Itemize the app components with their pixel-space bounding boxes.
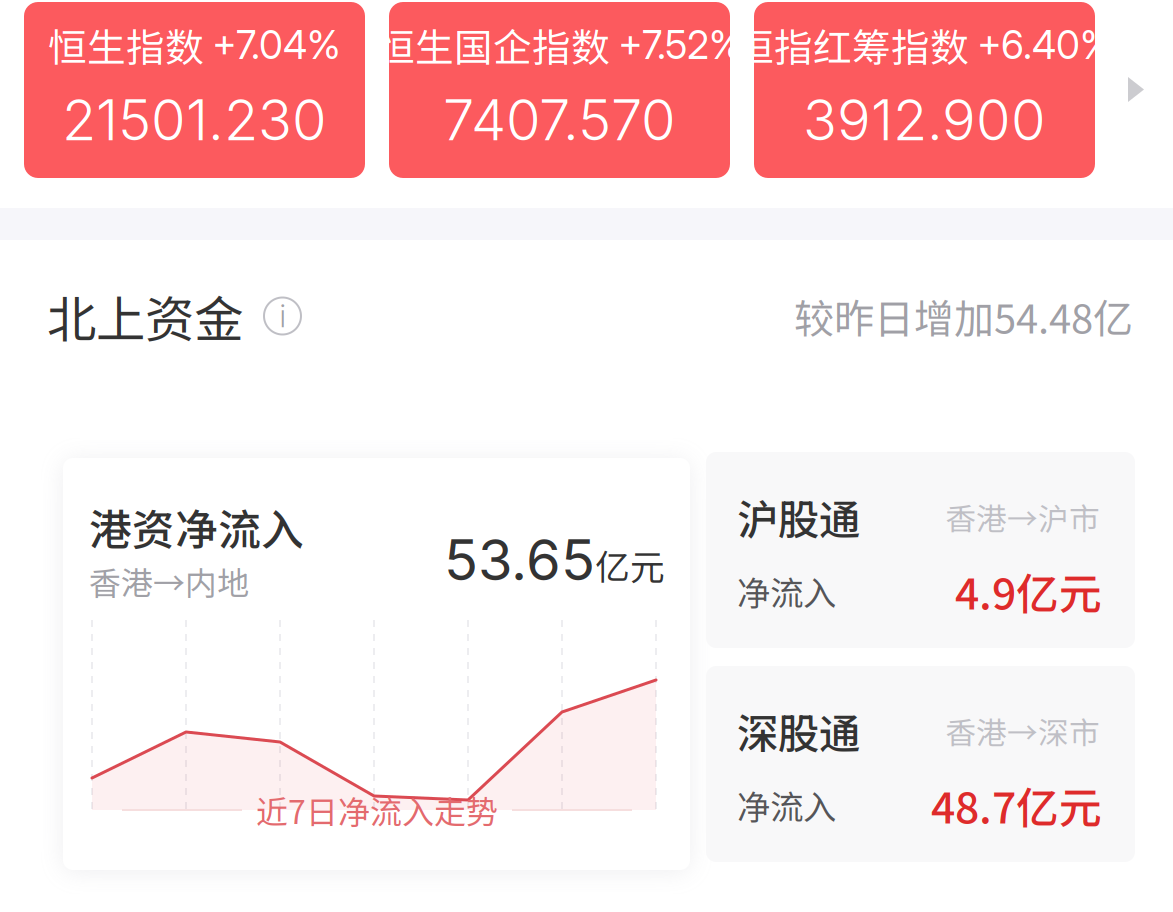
button[interactable]: 恒生国企指数	[389, 2, 730, 178]
button[interactable]: 沪股通	[706, 452, 1135, 648]
staticText: 53.65	[444, 526, 595, 594]
staticText: 7407.570	[443, 86, 676, 154]
staticText: 亿元	[595, 540, 665, 590]
staticText: 恒生指数	[48, 17, 204, 73]
staticText: 21501.230	[62, 86, 327, 154]
staticText: i	[279, 297, 285, 334]
staticText: 恒生国企指数	[376, 17, 610, 73]
staticText: +7.04%	[212, 22, 341, 68]
staticText: 较昨日增加54.48亿	[794, 287, 1133, 345]
button[interactable]: 恒指红筹指数	[754, 2, 1095, 178]
staticText: 净流入	[737, 781, 836, 829]
staticText: 净流入	[737, 567, 836, 615]
staticText: 北上资金	[47, 280, 243, 352]
staticText: 港资净流入	[89, 496, 304, 558]
button[interactable]: 恒生指数	[24, 2, 365, 178]
staticText: 近7日净流入走势	[256, 787, 498, 833]
staticText: 香港→沪市	[945, 495, 1100, 539]
button[interactable]: 深股通	[706, 666, 1135, 862]
staticText: 48.7亿元	[931, 774, 1102, 836]
staticText: +7.52%	[618, 22, 743, 68]
staticText: 3912.900	[803, 86, 1046, 154]
button[interactable]: More indices	[1128, 77, 1146, 104]
staticText: 4.9亿元	[955, 560, 1102, 622]
staticText: 香港→深市	[945, 709, 1100, 753]
staticText: +6.40%	[977, 22, 1114, 68]
staticText: 恒指红筹指数	[735, 17, 969, 73]
staticText: 深股通	[737, 701, 860, 761]
staticText: 沪股通	[737, 487, 860, 547]
staticText: 香港→内地	[89, 558, 249, 604]
